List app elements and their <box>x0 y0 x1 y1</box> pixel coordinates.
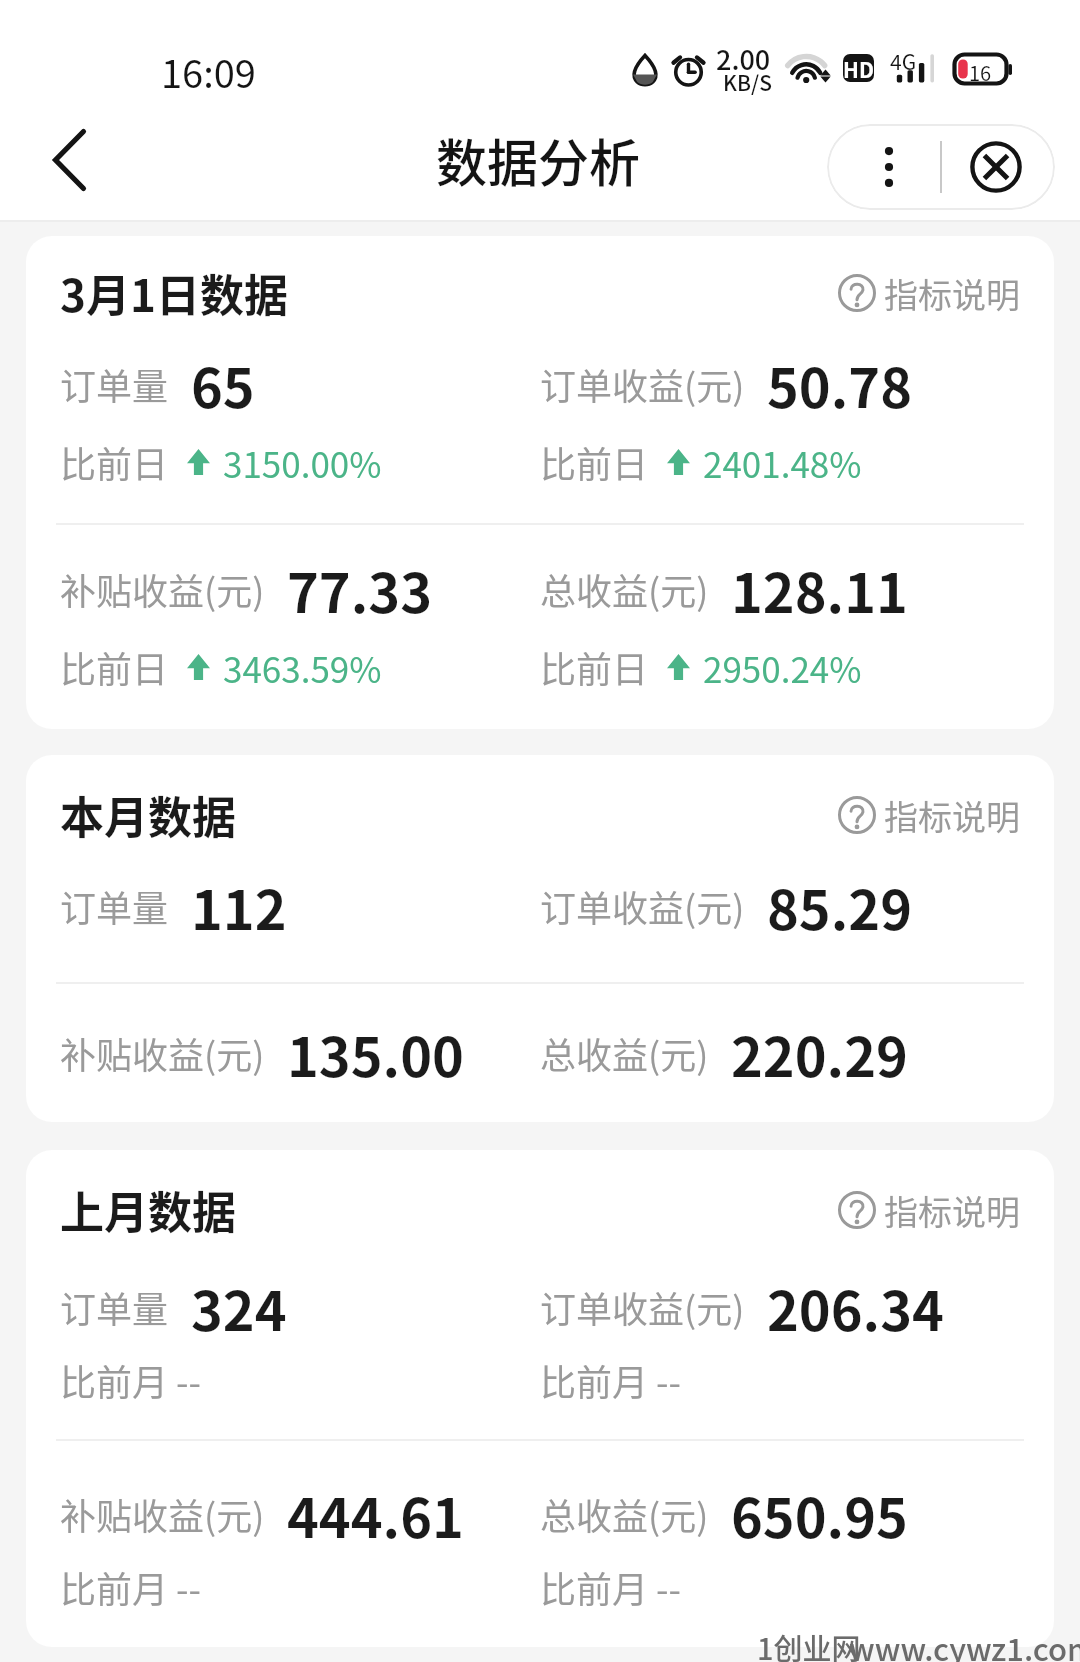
staticText: 220.29 <box>731 1014 908 1092</box>
button[interactable]: Back <box>26 117 110 209</box>
staticText: 16:09 <box>161 44 256 99</box>
button[interactable]: 指标说明 <box>836 784 1020 846</box>
staticText: 比前月 -- <box>540 1354 682 1406</box>
staticText: 比前日 <box>60 436 169 488</box>
staticText: 206.34 <box>767 1268 944 1346</box>
staticText: 数据分析 <box>436 123 641 197</box>
staticText: 补贴收益(元) <box>60 1488 265 1540</box>
staticText: 4G <box>890 46 917 76</box>
staticText: 指标说明 <box>884 1186 1020 1235</box>
staticText: 订单量 <box>60 358 169 410</box>
staticText: 总收益(元) <box>540 1488 709 1540</box>
staticText: 128.11 <box>731 550 908 628</box>
staticText: 112 <box>191 867 287 945</box>
staticText: 比前月 -- <box>60 1354 202 1406</box>
staticText: 3月1日数据 <box>60 261 288 325</box>
staticText: 上月数据 <box>60 1178 236 1242</box>
staticText: 2.00 <box>716 39 771 78</box>
staticText: 2401.48% <box>703 437 862 488</box>
staticText: 3463.59% <box>223 642 382 693</box>
staticText: 16 <box>969 58 992 87</box>
staticText: 指标说明 <box>884 791 1020 840</box>
staticText: 85.29 <box>767 867 912 945</box>
staticText: 补贴收益(元) <box>60 1027 265 1079</box>
staticText: 订单收益(元) <box>540 358 745 410</box>
staticText: 50.78 <box>767 345 912 423</box>
staticText: 比前日 <box>540 436 649 488</box>
staticText: 总收益(元) <box>540 1027 709 1079</box>
staticText: 3150.00% <box>223 437 382 488</box>
staticText: 订单收益(元) <box>540 1281 745 1333</box>
staticText: 比前日 <box>540 641 649 693</box>
staticText: 650.95 <box>731 1475 908 1553</box>
staticText: 总收益(元) <box>540 563 709 615</box>
button[interactable]: 指标说明 <box>836 1179 1020 1241</box>
staticText: 订单量 <box>60 1281 169 1333</box>
staticText: 2950.24% <box>703 642 862 693</box>
staticText: 135.00 <box>287 1014 464 1092</box>
button[interactable]: 指标说明 <box>836 262 1020 324</box>
staticText: 444.61 <box>287 1475 464 1553</box>
staticText: KB/S <box>723 67 772 97</box>
staticText: HD <box>843 54 874 82</box>
staticText: 比前月 -- <box>60 1561 202 1613</box>
staticText: 比前月 -- <box>540 1561 682 1613</box>
staticText: 65 <box>191 345 255 423</box>
staticText: 比前日 <box>60 641 169 693</box>
button[interactable]: More options <box>827 124 940 210</box>
staticText: 订单收益(元) <box>540 880 745 932</box>
staticText: 77.33 <box>287 550 432 628</box>
staticText: www.cywz1.com <box>849 1625 1080 1662</box>
staticText: 补贴收益(元) <box>60 563 265 615</box>
button[interactable]: Close <box>942 124 1055 210</box>
staticText: 324 <box>191 1268 287 1346</box>
staticText: 本月数据 <box>60 783 236 847</box>
staticText: 指标说明 <box>884 269 1020 318</box>
staticText: 1创业网 <box>757 1626 861 1662</box>
staticText: 订单量 <box>60 880 169 932</box>
